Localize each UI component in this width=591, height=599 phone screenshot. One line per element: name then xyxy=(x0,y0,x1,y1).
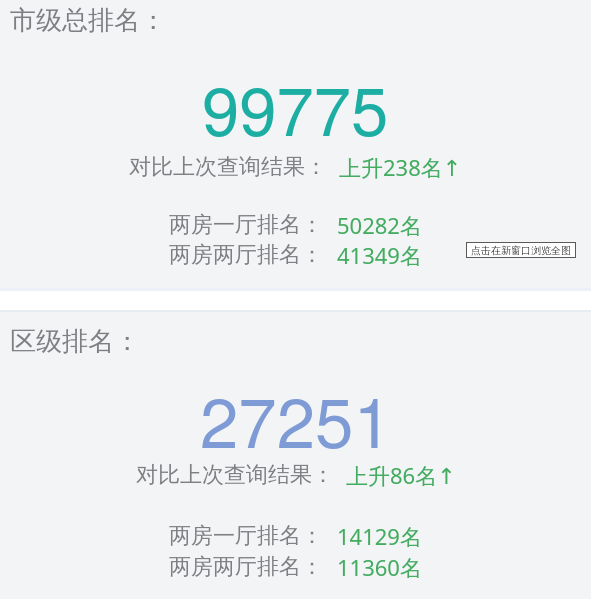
staticText: 14129名 xyxy=(337,521,422,551)
staticText: 对比上次查询结果： xyxy=(129,153,327,181)
staticText: 上升86名↑ xyxy=(346,460,456,490)
staticText: 两房一厅排名： xyxy=(169,211,323,239)
staticText: 11360名 xyxy=(337,552,422,582)
staticText: 41349名 xyxy=(337,240,422,270)
staticText: 两房两厅排名： xyxy=(169,241,323,269)
staticText: 区级排名： xyxy=(10,325,140,358)
staticText: 点击在新窗口浏览全图 xyxy=(471,244,571,257)
staticText: 上升238名↑ xyxy=(339,152,462,182)
staticText: 两房两厅排名： xyxy=(169,553,323,581)
staticText: 99775 xyxy=(202,59,389,139)
staticText: 市级总排名： xyxy=(10,4,166,37)
staticText: 50282名 xyxy=(337,210,422,240)
staticText: 对比上次查询结果： xyxy=(136,461,334,489)
staticText: 两房一厅排名： xyxy=(169,522,323,550)
button[interactable]: 点击在新窗口浏览全图 xyxy=(466,242,576,258)
staticText: 27251 xyxy=(200,369,392,449)
